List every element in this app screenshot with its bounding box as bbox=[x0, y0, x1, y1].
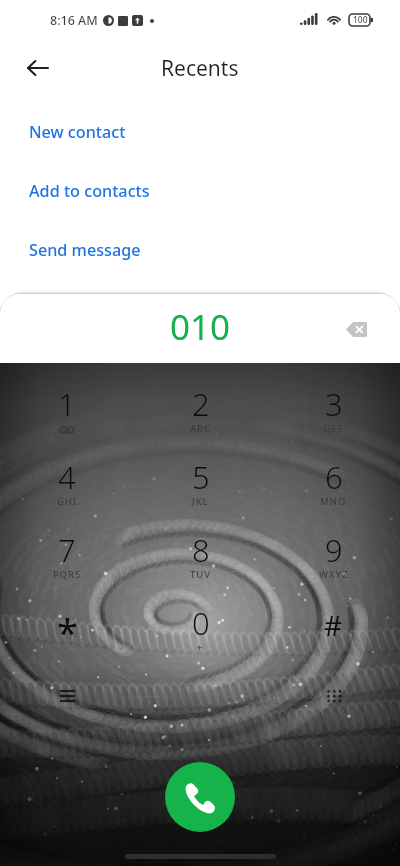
staticText: JKL bbox=[192, 495, 209, 508]
staticText: 5 bbox=[192, 456, 210, 498]
staticText: # bbox=[324, 606, 343, 644]
staticText: 100 bbox=[353, 14, 368, 26]
staticText: 010 bbox=[170, 303, 231, 351]
button[interactable]: 4 bbox=[0, 448, 134, 521]
button[interactable]: Add to contacts bbox=[0, 161, 400, 220]
staticText: 8 bbox=[192, 529, 210, 571]
staticText: 3 bbox=[325, 383, 343, 425]
button[interactable]: 8 bbox=[134, 521, 267, 594]
button[interactable]: 5 bbox=[134, 448, 267, 521]
staticText: WXYZ bbox=[319, 568, 349, 581]
staticText: 4 bbox=[58, 456, 76, 498]
staticText: 8:16 AM bbox=[50, 12, 98, 29]
button[interactable]: Back bbox=[14, 44, 62, 92]
staticText: * bbox=[57, 606, 78, 658]
staticText: MNO bbox=[320, 495, 347, 508]
staticText: GHI bbox=[57, 495, 78, 508]
staticText: 6 bbox=[325, 456, 343, 498]
button[interactable]: Backspace bbox=[334, 307, 378, 351]
button[interactable]: Call bbox=[165, 762, 235, 832]
staticText: PQRS bbox=[53, 568, 82, 581]
staticText: 2 bbox=[192, 383, 210, 425]
button[interactable]: More options bbox=[0, 667, 134, 723]
staticText: TUV bbox=[190, 568, 211, 581]
staticText: DEF bbox=[324, 422, 344, 435]
button[interactable]: Send message bbox=[0, 220, 400, 279]
button[interactable]: 1 bbox=[0, 375, 134, 448]
button[interactable]: Keypad bbox=[267, 667, 400, 723]
staticText: New contact bbox=[29, 121, 126, 143]
staticText: 1 bbox=[58, 383, 76, 425]
button[interactable]: # bbox=[267, 594, 400, 667]
staticText: 0 bbox=[192, 602, 210, 644]
staticText: Add to contacts bbox=[29, 180, 150, 202]
staticText: ABC bbox=[190, 422, 212, 435]
staticText: 7 bbox=[58, 529, 76, 571]
button[interactable]: * bbox=[0, 594, 134, 667]
button[interactable]: 2 bbox=[134, 375, 267, 448]
staticText: Recents bbox=[161, 54, 239, 83]
button[interactable]: 9 bbox=[267, 521, 400, 594]
button[interactable]: 7 bbox=[0, 521, 134, 594]
button[interactable]: New contact bbox=[0, 102, 400, 161]
button[interactable]: 6 bbox=[267, 448, 400, 521]
staticText: 9 bbox=[325, 529, 343, 571]
button[interactable]: 3 bbox=[267, 375, 400, 448]
button[interactable]: 0 bbox=[134, 594, 267, 667]
staticText: Send message bbox=[29, 239, 141, 261]
staticText: + bbox=[197, 641, 204, 654]
